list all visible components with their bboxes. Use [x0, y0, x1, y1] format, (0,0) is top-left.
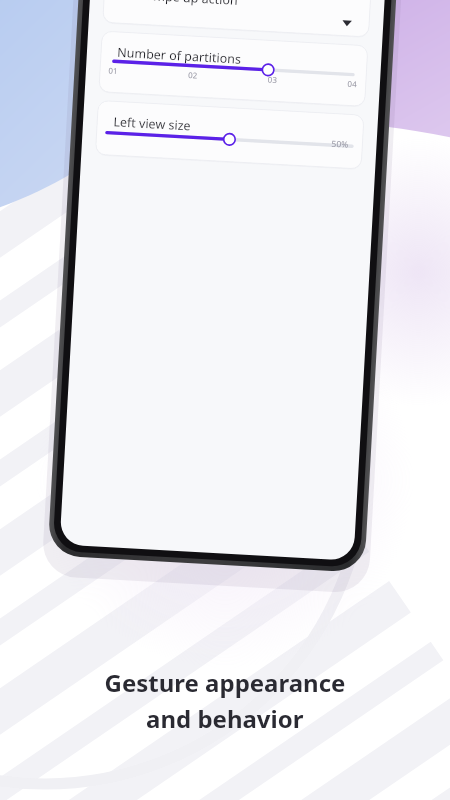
button[interactable]: Gesture appearance and behavior	[0, 0, 450, 800]
